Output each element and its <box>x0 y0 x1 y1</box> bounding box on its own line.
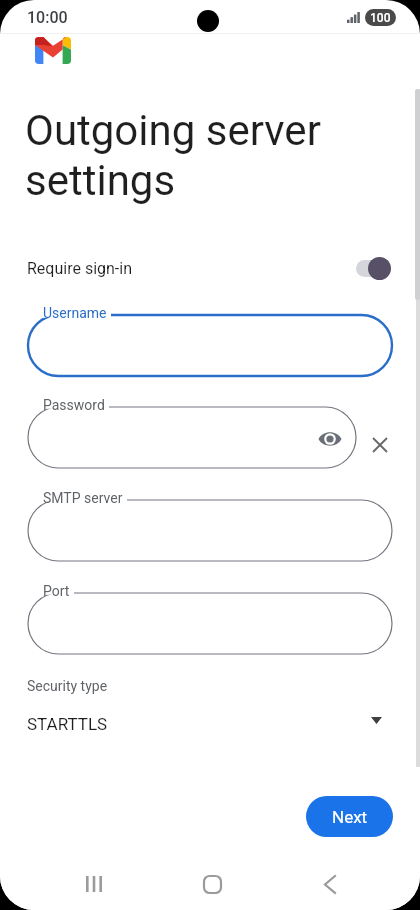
button[interactable]: Back <box>302 856 358 910</box>
button[interactable]: Port <box>28 583 392 654</box>
button[interactable]: Home <box>184 856 240 910</box>
staticText: Username <box>43 305 107 321</box>
staticText: STARTTLS <box>27 714 108 734</box>
button[interactable]: Security type <box>0 678 420 742</box>
button[interactable]: Next <box>306 796 393 837</box>
button[interactable]: SMTP server <box>28 490 392 561</box>
staticText: Security type <box>27 678 108 694</box>
button[interactable]: Require sign-in toggle <box>356 255 392 281</box>
button[interactable]: Show password <box>311 420 349 458</box>
staticText: Password <box>43 397 105 413</box>
staticText: Next <box>332 807 368 827</box>
button[interactable]: Require sign-in <box>0 246 420 290</box>
staticText: Port <box>43 583 70 599</box>
button[interactable]: Password <box>28 397 356 468</box>
button[interactable]: Username <box>28 305 392 376</box>
staticText: 10:00 <box>27 8 68 27</box>
button[interactable]: Clear password <box>360 425 400 465</box>
staticText: Outgoing server settings <box>25 106 321 205</box>
button[interactable]: Recent apps <box>66 856 122 910</box>
staticText: SMTP server <box>43 490 123 506</box>
staticText: 100 <box>370 11 391 25</box>
staticText: Require sign-in <box>27 259 132 278</box>
